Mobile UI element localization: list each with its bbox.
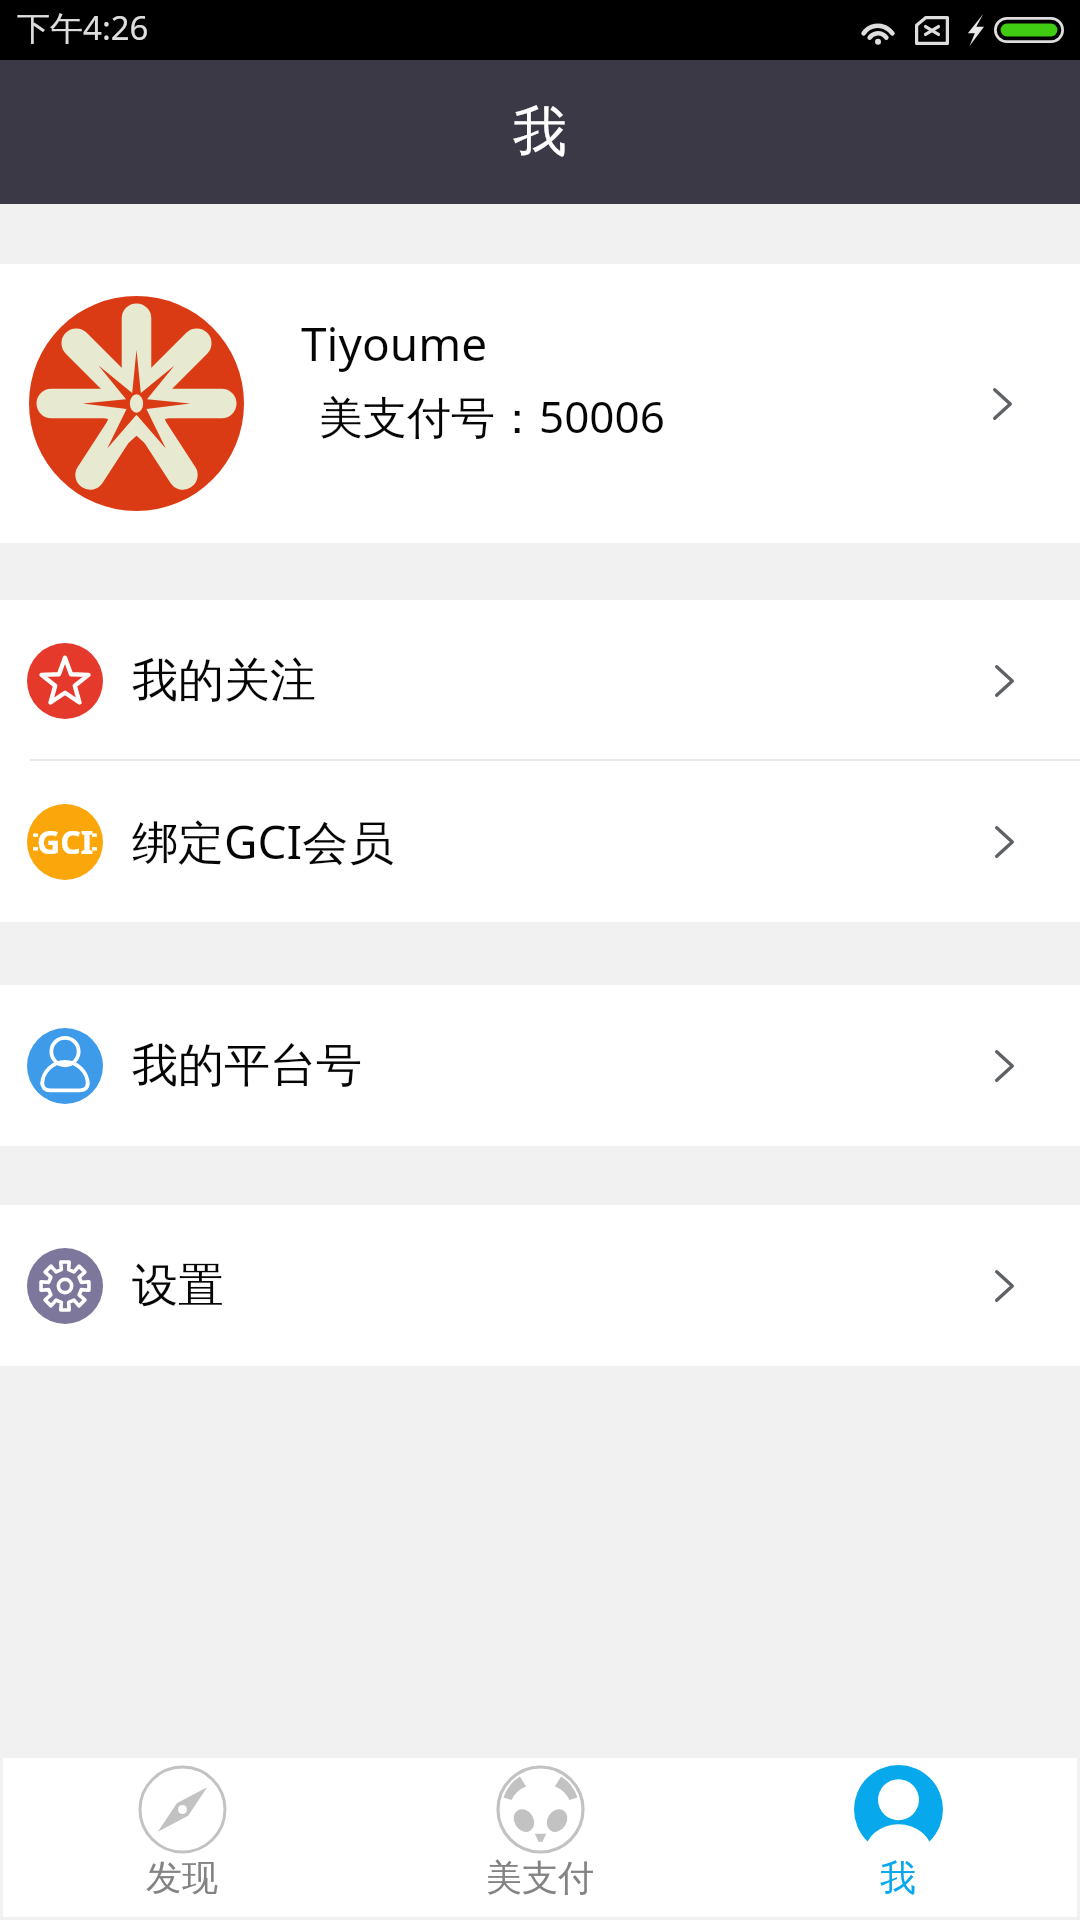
staticText: 美支付: [486, 1855, 594, 1900]
staticText: 我的平台号: [132, 1037, 362, 1095]
button[interactable]: 我的关注: [0, 600, 1080, 761]
staticText: 我的关注: [132, 652, 316, 710]
button[interactable]: Tiyoume 美支付号：50006: [0, 264, 1080, 543]
staticText: Tiyoume: [301, 312, 488, 375]
button[interactable]: 绑定GCI会员: [0, 761, 1080, 922]
staticText: 绑定GCI会员: [132, 810, 395, 873]
staticText: GCI: [37, 820, 94, 864]
staticText: 美支付号：50006: [319, 386, 665, 446]
button[interactable]: 发现: [3, 1758, 361, 1917]
button[interactable]: 设置: [0, 1205, 1080, 1366]
button[interactable]: 我的平台号: [0, 985, 1080, 1146]
staticText: 设置: [132, 1257, 224, 1315]
button[interactable]: 我: [719, 1758, 1077, 1917]
staticText: 发现: [146, 1855, 218, 1900]
button[interactable]: 美支付: [361, 1758, 719, 1917]
staticText: 我: [880, 1855, 916, 1900]
staticText: 我: [513, 98, 567, 166]
staticText: 下午4:26: [17, 5, 149, 50]
